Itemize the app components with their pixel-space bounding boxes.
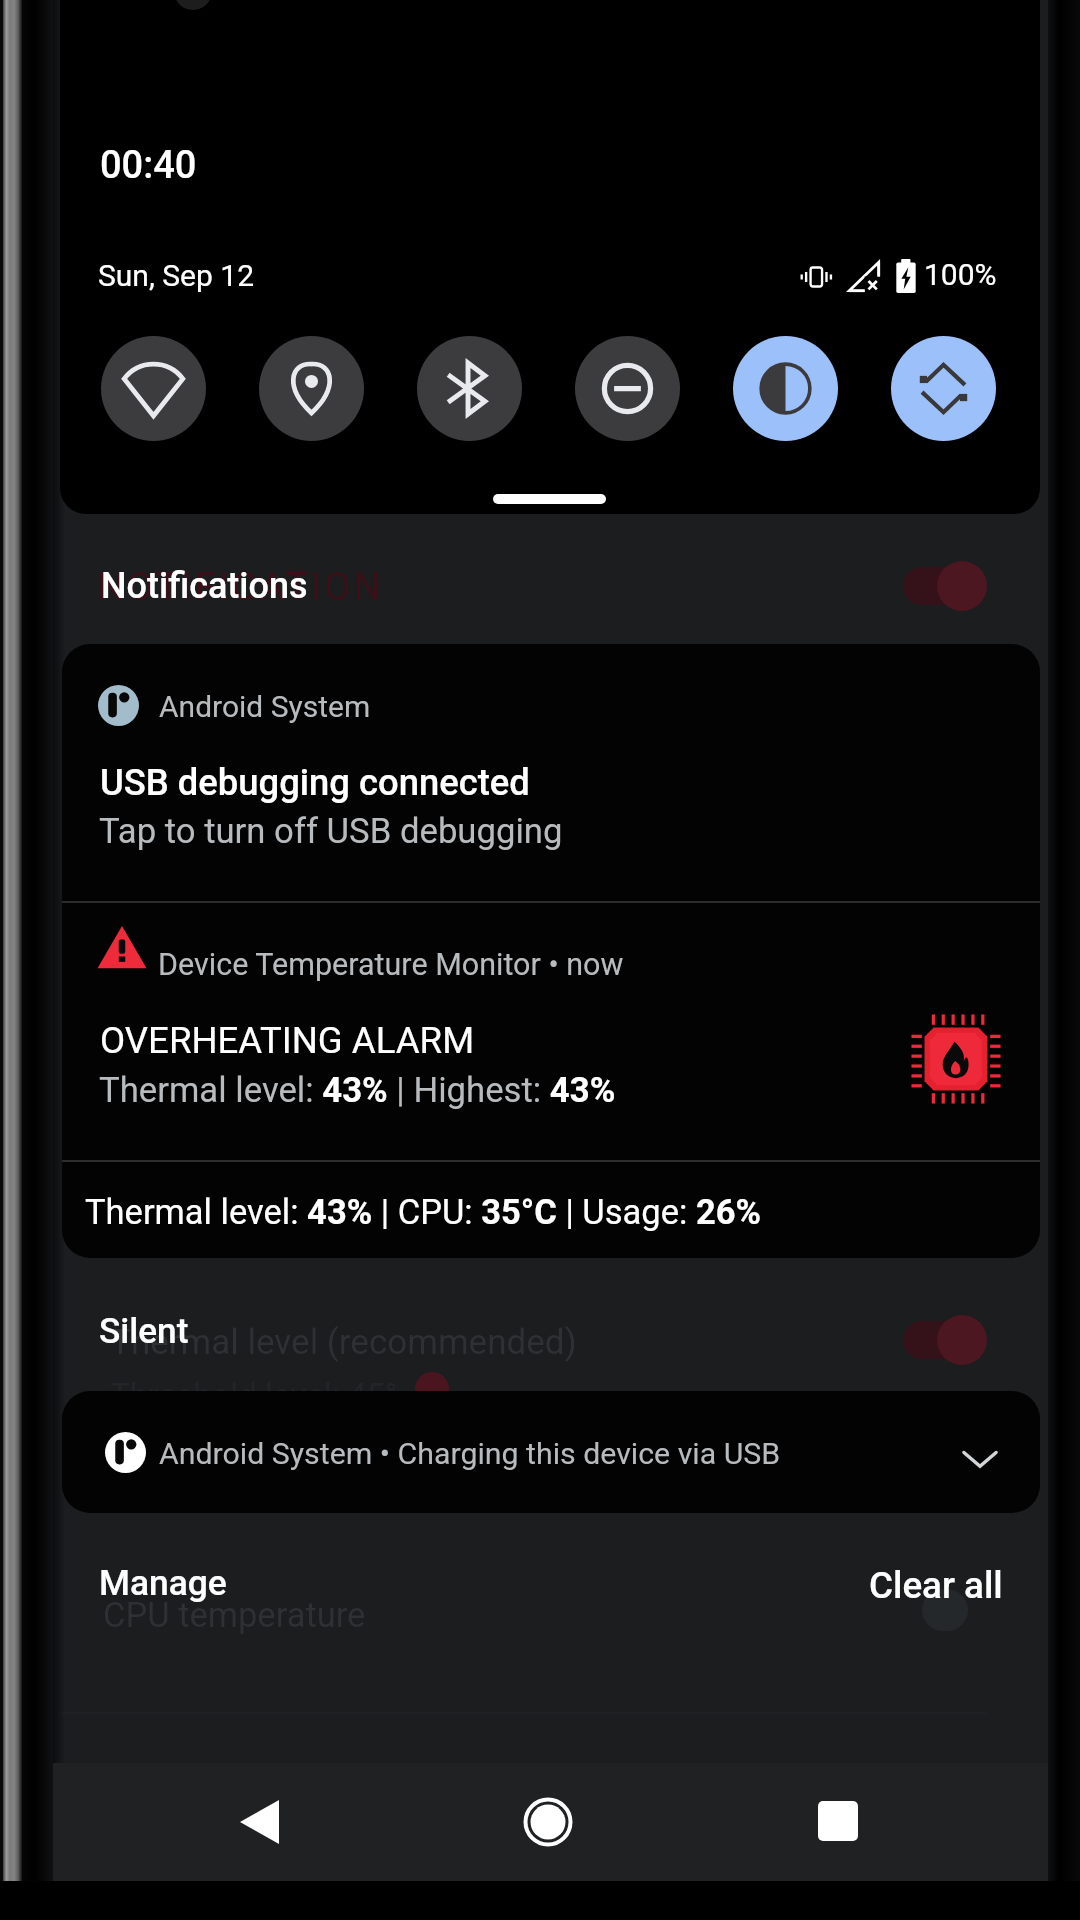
button[interactable]: Clear all	[836, 1538, 1016, 1610]
staticText: Android System • Charging this device vi…	[159, 1436, 781, 1472]
staticText: Device Temperature Monitor • now	[158, 947, 624, 983]
button[interactable]: Android System • Charging this device vi…	[62, 1391, 1040, 1513]
staticText: Silent	[99, 1310, 189, 1351]
button[interactable]: Android System	[62, 644, 1040, 901]
button[interactable]: Thermal level: 43% | CPU: 35°C | Usage: …	[62, 1162, 1040, 1258]
button[interactable]: Notifications	[62, 538, 986, 622]
staticText: Manage	[99, 1562, 227, 1603]
button[interactable]: Manage	[66, 1538, 266, 1610]
staticText: Tap to turn off USB debugging	[99, 811, 563, 852]
button[interactable]: Do not disturb	[575, 336, 680, 441]
button[interactable]: Silent	[62, 1283, 986, 1367]
staticText: Notifications	[101, 565, 308, 607]
staticText: 100%	[924, 257, 997, 292]
staticText: OVERHEATING ALARM	[100, 1019, 475, 1062]
staticText: NOTIFICATION	[97, 565, 384, 610]
button[interactable]: Auto-rotate	[891, 336, 996, 441]
button[interactable]: Internet	[101, 336, 206, 441]
staticText: USB debugging connected	[100, 761, 530, 804]
staticText: CPU temperature	[103, 1595, 366, 1635]
staticText: Threshold level: 45°	[110, 1376, 398, 1415]
staticText: 00:40	[100, 143, 197, 188]
button[interactable]: Recent apps	[758, 1763, 918, 1881]
staticText: Sun, Sep 12	[98, 258, 254, 293]
button[interactable]: Dark theme	[733, 336, 838, 441]
staticText: Thermal level (recommended)	[110, 1322, 577, 1363]
staticText: Clear all	[869, 1564, 1003, 1607]
staticText: Android System	[159, 689, 371, 724]
staticText: Thermal level: 43% | CPU: 35°C | Usage: …	[85, 1192, 761, 1232]
button[interactable]: Back	[180, 1763, 340, 1881]
button[interactable]: Device Temperature Monitor • now	[62, 903, 1040, 1160]
button[interactable]: Location	[259, 336, 364, 441]
button[interactable]: Bluetooth	[417, 336, 522, 441]
button[interactable]: Home	[468, 1763, 628, 1881]
staticText: Thermal level: 43% | Highest: 43%	[99, 1070, 616, 1111]
